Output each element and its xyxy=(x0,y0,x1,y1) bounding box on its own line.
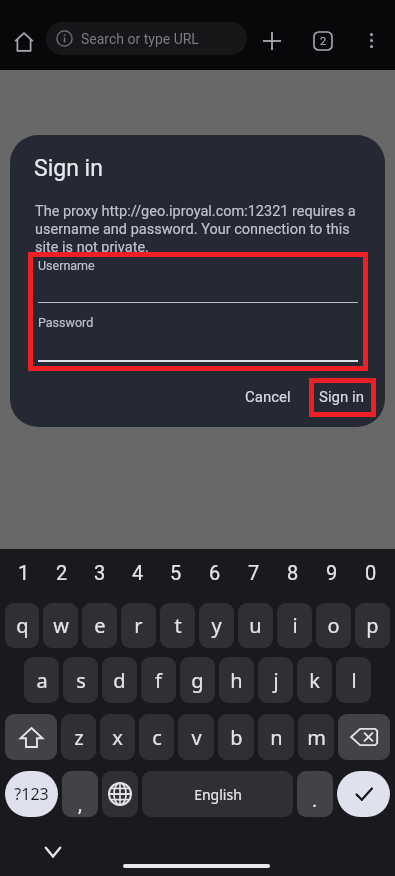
button[interactable]: English xyxy=(142,771,293,817)
staticText: 6 xyxy=(209,561,221,584)
button[interactable]: Enter xyxy=(337,771,390,817)
staticText: w xyxy=(53,612,69,639)
button[interactable]: Home xyxy=(4,22,44,62)
staticText: i xyxy=(292,612,298,639)
staticText: 1 xyxy=(18,561,30,584)
button[interactable]: w xyxy=(43,603,78,648)
button[interactable]: 5 xyxy=(157,549,195,596)
staticText: b xyxy=(230,724,243,751)
button[interactable]: m xyxy=(298,714,334,760)
button[interactable]: 0 xyxy=(351,549,390,596)
button[interactable]: Sign in xyxy=(305,378,378,416)
button[interactable]: 6 xyxy=(195,549,234,596)
staticText: o xyxy=(327,612,340,639)
staticText: 7 xyxy=(248,561,260,584)
button[interactable]: y xyxy=(199,603,234,648)
button[interactable]: l xyxy=(336,657,371,703)
button[interactable]: Backspace xyxy=(338,714,390,760)
staticText: r xyxy=(134,612,143,639)
staticText: j xyxy=(273,667,279,694)
staticText: 3 xyxy=(94,561,106,584)
staticText: p xyxy=(366,612,379,639)
button[interactable]: r xyxy=(121,603,156,648)
staticText: . xyxy=(312,788,318,811)
button[interactable]: New tab xyxy=(254,23,290,59)
button[interactable]: x xyxy=(100,714,135,760)
button[interactable]: u xyxy=(238,603,273,648)
staticText: z xyxy=(74,724,84,751)
staticText: s xyxy=(76,667,86,694)
staticText: e xyxy=(94,612,106,639)
button[interactable]: b xyxy=(218,714,254,760)
staticText: x xyxy=(112,724,123,751)
button[interactable]: Change language xyxy=(102,771,138,817)
button[interactable]: 7 xyxy=(234,549,273,596)
staticText: u xyxy=(249,612,262,639)
staticText: d xyxy=(113,667,126,694)
button[interactable]: n xyxy=(258,714,294,760)
staticText: n xyxy=(270,724,283,751)
button[interactable]: 2 xyxy=(43,549,81,596)
button[interactable]: k xyxy=(297,657,332,703)
staticText: ?123 xyxy=(14,783,49,805)
staticText: l xyxy=(351,667,357,694)
button[interactable]: 3 xyxy=(81,549,119,596)
button[interactable]: d xyxy=(102,657,137,703)
button[interactable]: 1 xyxy=(5,549,43,596)
button[interactable]: 8 xyxy=(273,549,312,596)
button[interactable]: More options xyxy=(353,22,389,58)
staticText: Sign in xyxy=(319,388,364,406)
staticText: 8 xyxy=(287,561,299,584)
button[interactable]: a xyxy=(24,657,59,703)
button[interactable]: 9 xyxy=(312,549,351,596)
staticText: c xyxy=(152,724,162,751)
button[interactable]: p xyxy=(355,603,390,648)
staticText: y xyxy=(211,612,222,639)
staticText: a xyxy=(36,667,48,694)
button[interactable]: ?123 xyxy=(5,771,58,817)
staticText: Sign in xyxy=(34,155,103,182)
staticText: 9 xyxy=(326,561,338,584)
staticText: v xyxy=(191,724,202,751)
button[interactable]: h xyxy=(219,657,254,703)
staticText: 0 xyxy=(365,561,377,584)
staticText: m xyxy=(307,724,326,751)
button[interactable]: v xyxy=(178,714,214,760)
button[interactable]: o xyxy=(316,603,351,648)
button[interactable]: f xyxy=(141,657,176,703)
staticText: Cancel xyxy=(245,388,291,406)
staticText: f xyxy=(155,667,162,694)
staticText: , xyxy=(78,792,82,815)
staticText: The proxy http://geo.iproyal.com:12321 r… xyxy=(35,203,359,255)
staticText: t xyxy=(174,612,182,639)
button[interactable]: Cancel xyxy=(231,378,305,416)
button[interactable]: g xyxy=(180,657,215,703)
button[interactable]: c xyxy=(139,714,174,760)
staticText: k xyxy=(309,667,320,694)
staticText: g xyxy=(191,667,204,694)
staticText: h xyxy=(230,667,243,694)
button[interactable]: z xyxy=(61,714,96,760)
button[interactable]: j xyxy=(258,657,293,703)
button[interactable]: e xyxy=(82,603,117,648)
button[interactable]: Hide keyboard xyxy=(37,835,69,867)
staticText: Search or type URL xyxy=(81,31,199,47)
button[interactable]: s xyxy=(63,657,98,703)
button[interactable]: Period xyxy=(297,771,333,817)
button[interactable]: Comma xyxy=(62,771,98,817)
staticText: Username xyxy=(38,258,95,273)
button[interactable]: t xyxy=(160,603,195,648)
button[interactable]: q xyxy=(5,603,39,648)
button[interactable]: 4 xyxy=(119,549,157,596)
staticText: 2 xyxy=(56,561,68,584)
staticText: q xyxy=(16,612,29,639)
button[interactable]: Switch tabs xyxy=(305,23,341,59)
button[interactable]: i xyxy=(277,603,312,648)
staticText: 5 xyxy=(170,561,182,584)
button[interactable]: Search or type URL xyxy=(46,22,247,55)
staticText: 2 xyxy=(320,35,327,48)
staticText: English xyxy=(194,785,242,804)
staticText: 4 xyxy=(132,561,144,584)
button[interactable]: Shift xyxy=(5,714,57,760)
staticText: Password xyxy=(38,315,94,330)
